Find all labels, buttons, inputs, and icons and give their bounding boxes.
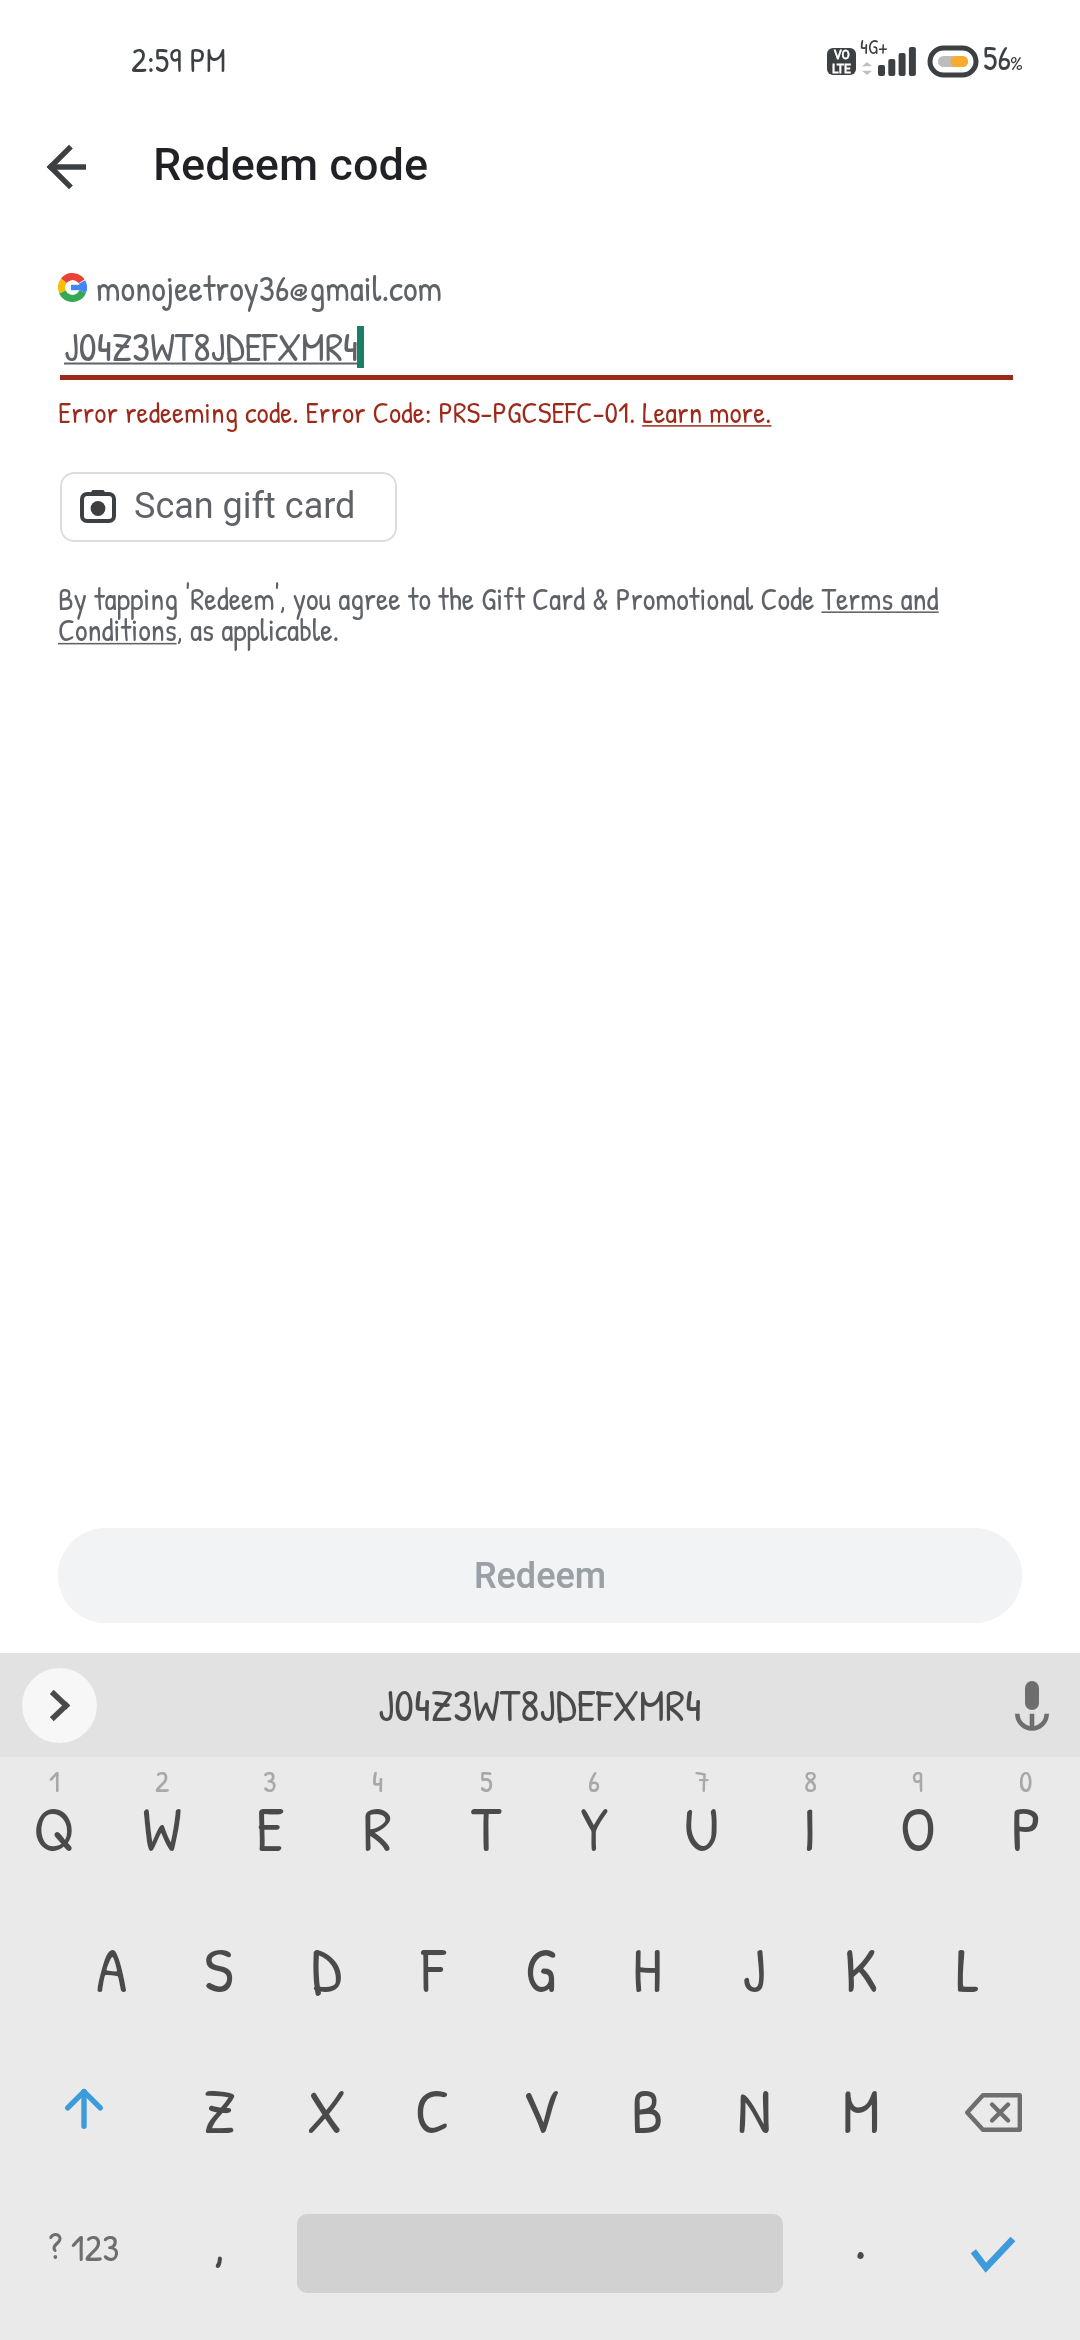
- button[interactable]: Back: [27, 127, 107, 207]
- staticText: S: [204, 1925, 234, 2012]
- button[interactable]: W: [108, 1777, 216, 1877]
- button[interactable]: C: [379, 2059, 487, 2159]
- button[interactable]: P: [972, 1777, 1080, 1877]
- button[interactable]: Z: [165, 2059, 273, 2159]
- staticText: Scan gift card: [134, 485, 356, 527]
- button[interactable]: O: [864, 1777, 972, 1877]
- button[interactable]: T: [432, 1777, 540, 1877]
- button[interactable]: 7: [648, 1731, 756, 1831]
- staticText: %: [1010, 49, 1023, 76]
- staticText: Y: [580, 1784, 609, 1871]
- staticText: 4: [372, 1761, 384, 1802]
- staticText: L: [956, 1925, 980, 2012]
- staticText: ,: [213, 2200, 226, 2281]
- staticText: 7: [695, 1761, 710, 1802]
- button[interactable]: Voice input: [1005, 1673, 1059, 1735]
- staticText: X: [307, 2066, 346, 2153]
- staticText: 2:59 PM: [131, 37, 227, 83]
- staticText: O: [900, 1784, 936, 1871]
- button[interactable]: 2: [108, 1731, 216, 1831]
- button[interactable]: U: [648, 1777, 756, 1877]
- staticText: Z: [203, 2066, 236, 2153]
- staticText: B: [631, 2066, 664, 2153]
- staticText: 9: [912, 1761, 924, 1802]
- button[interactable]: E: [216, 1777, 324, 1877]
- button[interactable]: .: [806, 2186, 914, 2286]
- staticText: C: [415, 2066, 451, 2153]
- staticText: LTE: [832, 62, 851, 75]
- button[interactable]: Backspace: [939, 2062, 1047, 2162]
- button[interactable]: 4: [324, 1731, 432, 1831]
- staticText: W: [142, 1784, 182, 1871]
- button[interactable]: monojeetroy36@gmail.com: [52, 258, 453, 316]
- button[interactable]: Y: [540, 1777, 648, 1877]
- staticText: I: [802, 1784, 818, 1871]
- staticText: Q: [33, 1784, 75, 1871]
- staticText: G: [525, 1925, 556, 2012]
- button[interactable]: 5: [432, 1731, 540, 1831]
- staticText: 3: [263, 1761, 277, 1802]
- button[interactable]: A: [58, 1918, 166, 2018]
- button[interactable]: N: [700, 2059, 808, 2159]
- staticText: T: [471, 1784, 501, 1871]
- staticText: J04Z3WT8JDEFXMR4: [64, 319, 359, 373]
- button[interactable]: 6: [540, 1731, 648, 1831]
- button[interactable]: G: [486, 1918, 594, 2018]
- button[interactable]: More suggestions: [22, 1668, 97, 1743]
- staticText: 6: [588, 1761, 600, 1802]
- button[interactable]: I: [756, 1777, 864, 1877]
- button[interactable]: L: [914, 1918, 1022, 2018]
- button[interactable]: 0: [972, 1731, 1080, 1831]
- staticText: Redeem: [474, 1555, 607, 1597]
- staticText: F: [421, 1925, 445, 2012]
- staticText: 5: [480, 1761, 493, 1802]
- staticText: D: [311, 1925, 342, 2012]
- staticText: 2: [155, 1761, 170, 1802]
- staticText: 4G+: [860, 32, 889, 60]
- button[interactable]: S: [165, 1918, 273, 2018]
- button[interactable]: B: [593, 2059, 701, 2159]
- staticText: 56: [983, 35, 1011, 81]
- button[interactable]: 1: [0, 1731, 108, 1831]
- staticText: K: [844, 1925, 878, 2012]
- button[interactable]: Enter: [939, 2204, 1047, 2304]
- staticText: N: [737, 2066, 772, 2153]
- button[interactable]: Shift: [30, 2059, 138, 2159]
- staticText: 0: [1019, 1761, 1033, 1802]
- staticText: 1: [49, 1761, 60, 1802]
- staticText: .: [854, 2196, 867, 2277]
- button[interactable]: J04Z3WT8JDEFXMR4: [58, 312, 1013, 380]
- staticText: ? 123: [48, 2221, 120, 2272]
- staticText: 8: [804, 1761, 817, 1802]
- staticText: Error redeeming code. Error Code: PRS-PG…: [58, 392, 772, 433]
- staticText: A: [96, 1925, 128, 2012]
- staticText: P: [1011, 1784, 1042, 1871]
- button[interactable]: R: [324, 1777, 432, 1877]
- button[interactable]: K: [807, 1918, 915, 2018]
- button[interactable]: ,: [165, 2190, 273, 2290]
- staticText: H: [632, 1925, 662, 2012]
- staticText: monojeetroy36@gmail.com: [96, 263, 443, 312]
- button[interactable]: Q: [0, 1777, 108, 1877]
- staticText: M: [842, 2066, 881, 2153]
- button[interactable]: V: [486, 2059, 594, 2159]
- button[interactable]: F: [379, 1918, 487, 2018]
- staticText: J04Z3WT8JDEFXMR4: [378, 1675, 702, 1735]
- button[interactable]: Redeem: [58, 1528, 1022, 1623]
- button[interactable]: D: [272, 1918, 380, 2018]
- staticText: VO: [834, 48, 850, 62]
- staticText: R: [363, 1784, 393, 1871]
- button[interactable]: H: [593, 1918, 701, 2018]
- button[interactable]: X: [272, 2059, 380, 2159]
- staticText: V: [522, 2066, 558, 2153]
- button[interactable]: M: [807, 2059, 915, 2159]
- button[interactable]: 9: [864, 1731, 972, 1831]
- staticText: By tapping 'Redeem', you agree to the Gi…: [58, 578, 948, 651]
- button[interactable]: J: [700, 1918, 808, 2018]
- button[interactable]: Scan gift card: [60, 472, 397, 542]
- button[interactable]: 3: [216, 1731, 324, 1831]
- staticText: U: [684, 1784, 720, 1871]
- button[interactable]: ? 123: [30, 2196, 138, 2296]
- button[interactable]: 8: [756, 1731, 864, 1831]
